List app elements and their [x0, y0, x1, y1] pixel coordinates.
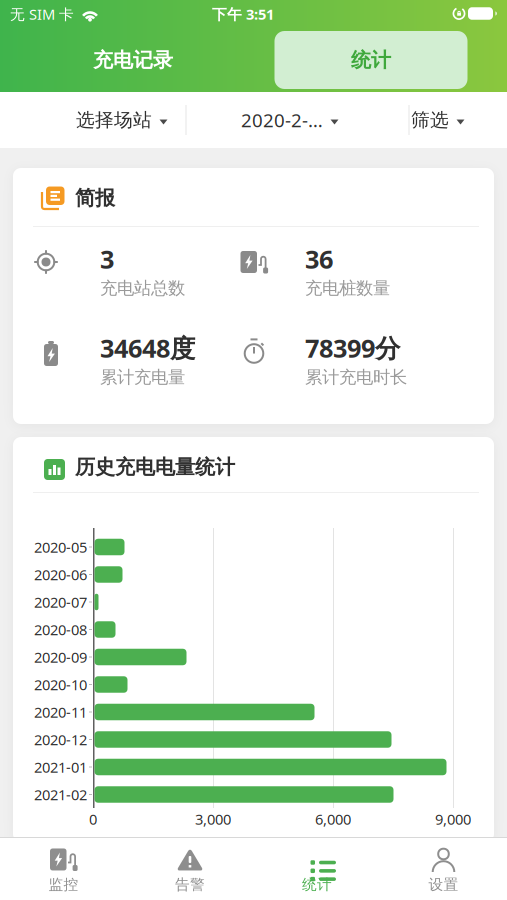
- staticText: 筛选: [411, 108, 449, 131]
- button[interactable]: 告警: [127, 840, 253, 900]
- staticText: 2020-10: [34, 675, 87, 694]
- button[interactable]: 筛选: [411, 92, 465, 148]
- staticText: 历史充电电量统计: [75, 455, 235, 479]
- staticText: 2020-12: [34, 730, 87, 749]
- button[interactable]: 选择场站: [76, 92, 168, 148]
- staticText: 下午 3:51: [212, 4, 274, 24]
- staticText: 充电站总数: [100, 278, 185, 299]
- staticText: 36: [305, 242, 333, 276]
- button[interactable]: 充电记录: [38, 31, 228, 89]
- staticText: 2020-09: [34, 647, 87, 667]
- staticText: 简报: [75, 186, 115, 210]
- staticText: 充电桩数量: [305, 278, 390, 299]
- staticText: 2020-05: [34, 537, 87, 557]
- button[interactable]: 设置: [380, 840, 506, 900]
- staticText: 3: [100, 242, 114, 276]
- button[interactable]: 统计: [254, 840, 380, 900]
- staticText: 3,000: [195, 809, 231, 829]
- staticText: 2020-06: [34, 565, 87, 584]
- staticText: 9,000: [435, 809, 471, 829]
- staticText: 监控: [48, 875, 78, 893]
- staticText: 选择场站: [76, 108, 152, 131]
- button[interactable]: 统计: [274, 31, 467, 89]
- button[interactable]: 2020-2-…: [241, 92, 339, 148]
- staticText: 统计: [351, 48, 391, 72]
- staticText: 2020-2-…: [241, 108, 323, 132]
- staticText: 设置: [428, 875, 458, 893]
- staticText: 累计充电量: [100, 367, 185, 388]
- staticText: 2020-08: [34, 620, 87, 639]
- staticText: 2021-01: [34, 757, 87, 777]
- staticText: 6,000: [315, 809, 351, 829]
- staticText: 34648度: [100, 331, 195, 365]
- staticText: 2021-02: [34, 785, 87, 804]
- button[interactable]: 监控: [0, 840, 126, 900]
- staticText: 2020-11: [34, 702, 87, 722]
- staticText: 告警: [175, 875, 205, 893]
- staticText: 统计: [302, 875, 332, 893]
- staticText: 0: [89, 809, 97, 829]
- staticText: 充电记录: [93, 48, 173, 72]
- staticText: 78399分: [305, 331, 400, 365]
- staticText: 累计充电时长: [305, 367, 407, 388]
- staticText: 2020-07: [34, 592, 87, 612]
- staticText: 无 SIM 卡: [10, 4, 74, 24]
